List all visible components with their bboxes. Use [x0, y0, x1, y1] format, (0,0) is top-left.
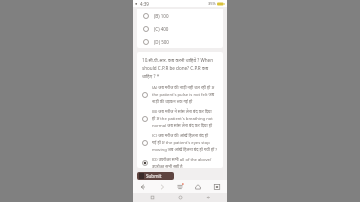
button[interactable]: Home [190, 180, 206, 193]
staticText: उपरोक्त सभी सही है [152, 164, 183, 168]
button[interactable]: Menu [172, 180, 188, 193]
staticText: (B) जब मरीज ने सांस लेना बंद कर दिया [152, 109, 212, 115]
button[interactable]: Tabs [209, 180, 225, 193]
staticText: नाड़ी की धड़कन रुक गई हो [152, 99, 193, 105]
button[interactable]: Back [199, 193, 217, 202]
staticText: Submit [146, 173, 162, 179]
button[interactable]: Forward [154, 180, 170, 193]
staticText: (C) जब मरीज की आंखें हिलना बंद हो [152, 133, 209, 139]
button[interactable]: (B) जब मरीज ने सांस लेना बंद कर दिया [142, 109, 218, 129]
button[interactable]: Submit [137, 172, 174, 180]
button[interactable]: Recents [143, 193, 161, 202]
staticText: हो If the patient's breathing not [152, 116, 213, 122]
button[interactable]: Home [171, 193, 189, 202]
staticText: 35% [208, 1, 216, 6]
staticText: (C) 400 [154, 26, 169, 32]
staticText: (B) 100 [154, 13, 169, 19]
button[interactable]: (C) 400 [143, 24, 219, 33]
staticText: the patient's pulse is not felt जब [152, 92, 215, 98]
button[interactable]: (B) 100 [143, 11, 219, 20]
staticText: 10.सी.पी.आर. कब करनी चाहिये ? When [142, 57, 214, 63]
staticText: should C.P.R be done? C.P.R कब करना [142, 65, 218, 71]
staticText: गई हो If the patient's eyes stop [152, 140, 210, 146]
staticText: (D) 500 [154, 39, 169, 45]
button[interactable]: (A) जब मरीज की नाड़ी नहीं चल रही हो If [142, 85, 218, 105]
staticText: (A) जब मरीज की नाड़ी नहीं चल रही हो If [152, 85, 215, 91]
button[interactable]: (D) उपरोक्त सभी all of the above/ [142, 157, 218, 168]
staticText: (D) उपरोक्त सभी all of the above/ [152, 157, 212, 163]
staticText: 4:39 [140, 1, 149, 7]
button[interactable]: Back [135, 180, 151, 193]
button[interactable]: (D) 500 [143, 37, 219, 46]
staticText: चाहिए ? * [142, 73, 160, 79]
staticText: moving जब आंखें हिलना बंद हो गयी हों ? [152, 147, 218, 153]
button[interactable]: (C) जब मरीज की आंखें हिलना बंद हो [142, 133, 218, 153]
staticText: normal जब सांस लेना बंद कर दिया हो [152, 123, 212, 129]
